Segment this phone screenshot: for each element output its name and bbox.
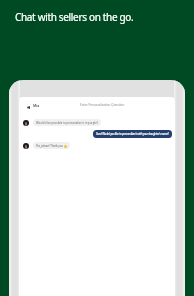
staticText: Chat with sellers on the go.: [15, 10, 134, 24]
staticText: Would it be possible to personalize it i…: [36, 121, 98, 125]
staticText: Mia: [33, 103, 40, 108]
other: Back: [26, 103, 31, 112]
staticText: Sure! Would you like to personalize it w…: [96, 132, 169, 136]
button[interactable]: Back: [26, 103, 167, 128]
staticText: Yes, please! Thank you: [36, 144, 63, 148]
staticText: Enter Personalization Question: [80, 103, 125, 107]
